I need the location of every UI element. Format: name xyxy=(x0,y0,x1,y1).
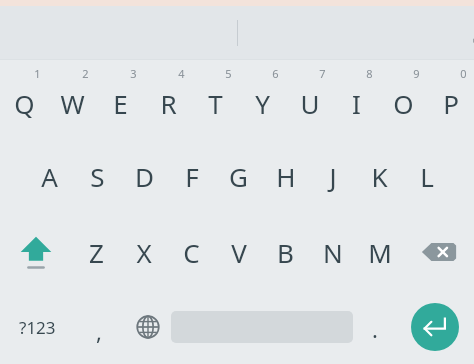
staticText: 8 xyxy=(366,66,373,81)
button[interactable]: C xyxy=(168,214,215,290)
button[interactable]: , xyxy=(74,290,124,364)
staticText: 1 xyxy=(34,66,41,81)
staticText: 5 xyxy=(225,66,232,81)
button[interactable]: K xyxy=(356,138,403,214)
button[interactable]: O xyxy=(380,60,427,138)
staticText: Z xyxy=(89,235,104,270)
staticText: A xyxy=(41,159,58,194)
button[interactable]: P xyxy=(427,60,474,138)
button[interactable]: . xyxy=(353,290,396,364)
button[interactable] xyxy=(171,290,353,364)
staticText: M xyxy=(368,235,392,270)
button[interactable]: Y xyxy=(239,60,286,138)
staticText: I xyxy=(352,86,361,121)
staticText: K xyxy=(371,159,388,194)
staticText: H xyxy=(276,159,296,194)
staticText: X xyxy=(136,235,152,270)
staticText: 6 xyxy=(272,66,279,81)
button[interactable]: F xyxy=(168,138,215,214)
button[interactable]: Z xyxy=(72,214,120,290)
staticText: 0 xyxy=(460,66,467,81)
staticText: 7 xyxy=(319,66,326,81)
staticText: ?123 xyxy=(19,316,56,339)
button[interactable]: E xyxy=(96,60,144,138)
button[interactable]: W xyxy=(48,60,96,138)
button[interactable]: X xyxy=(120,214,168,290)
button[interactable]: U xyxy=(286,60,333,138)
button[interactable]: R xyxy=(144,60,192,138)
staticText: 9 xyxy=(413,66,420,81)
button[interactable]: I xyxy=(333,60,380,138)
button[interactable]: H xyxy=(262,138,309,214)
staticText: 3 xyxy=(130,66,137,81)
button[interactable]: L xyxy=(403,138,450,214)
staticText: F xyxy=(185,159,199,194)
staticText: D xyxy=(135,159,154,194)
staticText: . xyxy=(372,314,378,344)
staticText: P xyxy=(443,86,459,121)
staticText: 4 xyxy=(178,66,185,81)
staticText: V xyxy=(231,235,247,270)
button[interactable]: B xyxy=(262,214,309,290)
staticText: T xyxy=(208,86,223,121)
button[interactable]: G xyxy=(215,138,262,214)
staticText: E xyxy=(113,86,128,121)
staticText: , xyxy=(96,316,102,346)
button[interactable]: N xyxy=(309,214,356,290)
button[interactable]: Backspace xyxy=(403,214,474,290)
staticText: R xyxy=(160,86,177,121)
staticText: Y xyxy=(255,86,270,121)
button[interactable]: T xyxy=(192,60,239,138)
button[interactable]: Change keyboard language xyxy=(124,290,171,364)
button[interactable]: ?123 xyxy=(0,290,74,364)
staticText: 2 xyxy=(82,66,89,81)
button[interactable]: Q xyxy=(0,60,48,138)
staticText: J xyxy=(329,159,337,194)
staticText: B xyxy=(277,235,294,270)
button[interactable]: A xyxy=(25,138,73,214)
staticText: W xyxy=(60,86,85,121)
button[interactable]: D xyxy=(121,138,168,214)
button[interactable]: J xyxy=(309,138,356,214)
staticText: O xyxy=(393,86,414,121)
button[interactable]: S xyxy=(73,138,121,214)
button[interactable]: Enter xyxy=(396,290,474,364)
button[interactable]: V xyxy=(215,214,262,290)
staticText: Q xyxy=(14,86,35,121)
staticText: G xyxy=(229,159,248,194)
staticText: C xyxy=(183,235,200,270)
button[interactable]: Shift xyxy=(0,214,72,290)
staticText: S xyxy=(90,159,105,194)
staticText: L xyxy=(420,159,434,194)
staticText: N xyxy=(323,235,343,270)
button[interactable]: M xyxy=(356,214,403,290)
staticText: U xyxy=(300,86,320,121)
